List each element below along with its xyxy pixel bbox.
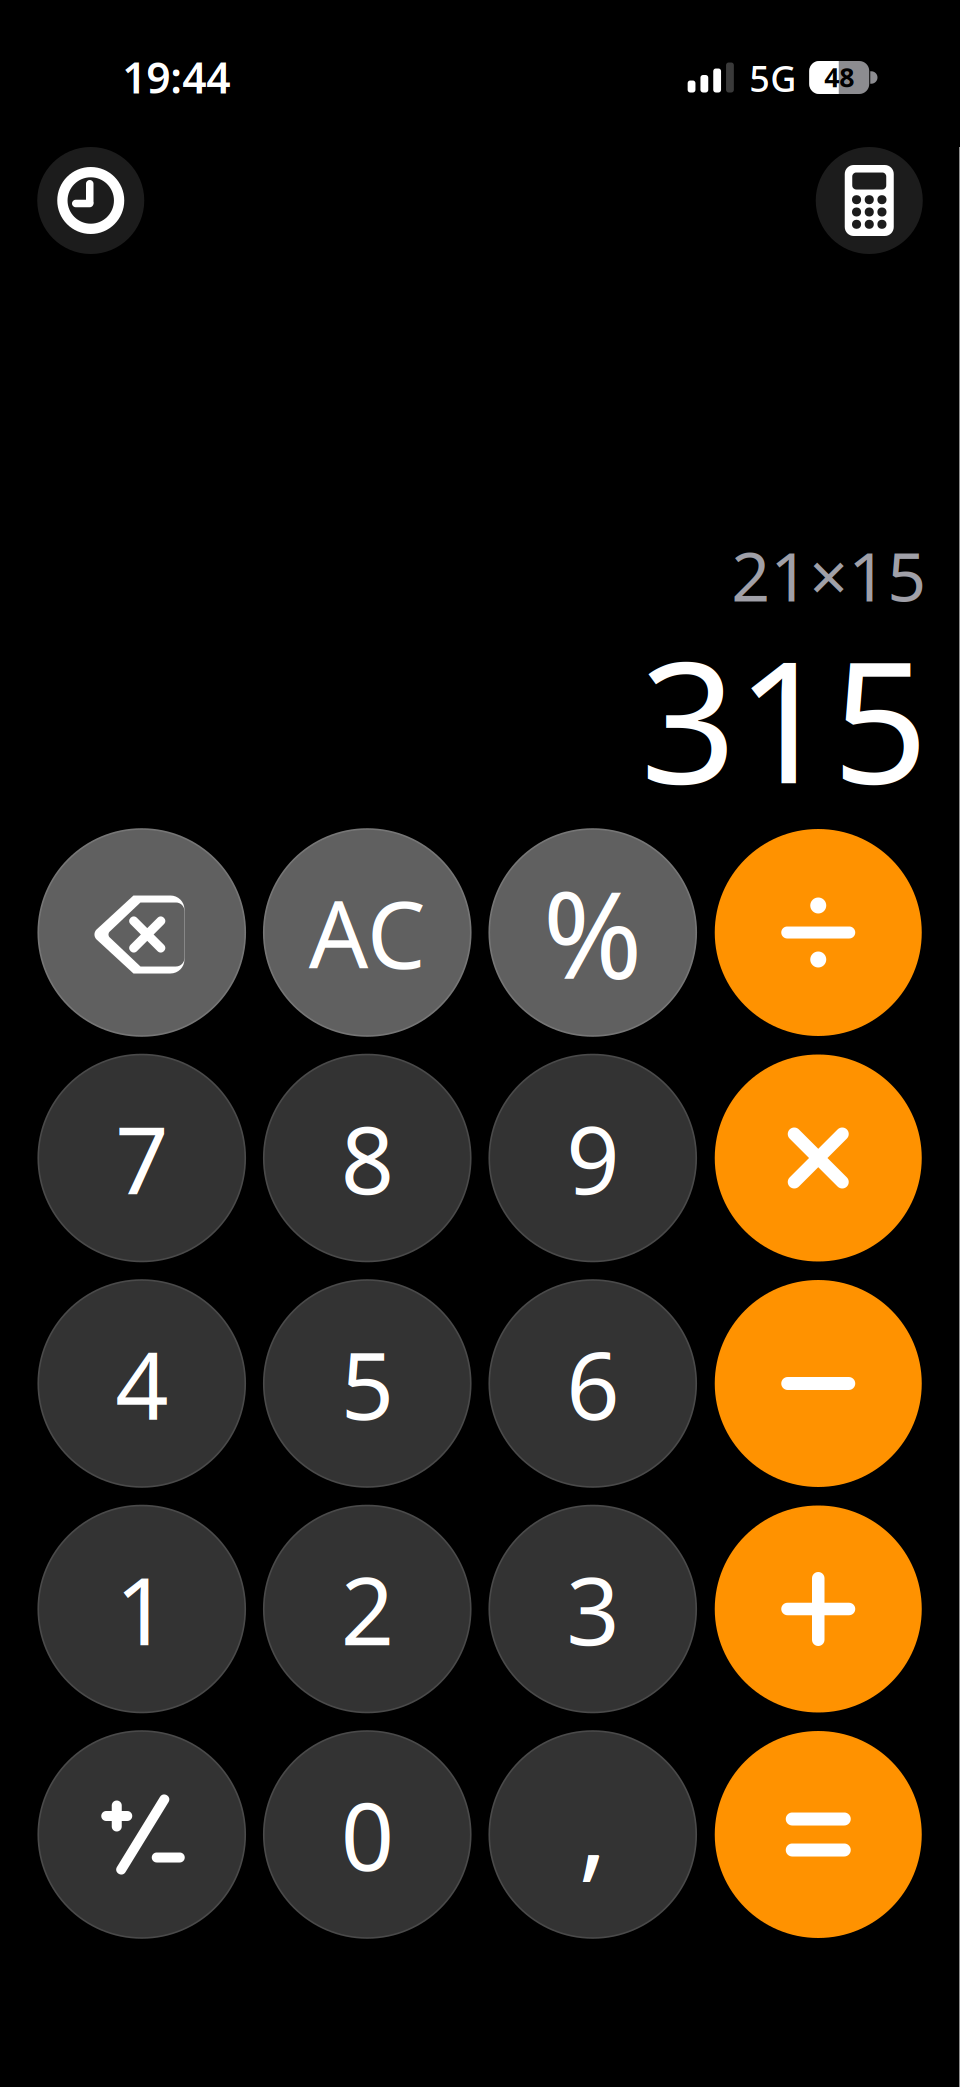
button[interactable]: Add xyxy=(715,1505,922,1712)
staticText: 3 xyxy=(566,1547,619,1671)
staticText: 5 xyxy=(341,1321,394,1445)
button[interactable]: Calculator xyxy=(816,147,923,254)
button[interactable]: 7 xyxy=(38,1054,245,1261)
button[interactable]: 9 xyxy=(489,1054,696,1261)
button[interactable]: AC xyxy=(264,829,471,1036)
button[interactable]: Delete xyxy=(38,829,245,1036)
button[interactable]: 2 xyxy=(264,1505,471,1712)
staticText: 6 xyxy=(566,1321,619,1445)
button[interactable]: 0 xyxy=(264,1731,471,1938)
staticText: 8 xyxy=(341,1096,394,1220)
staticText: 7 xyxy=(115,1096,168,1220)
button[interactable]: Multiply xyxy=(715,1054,922,1261)
staticText: 1 xyxy=(115,1547,168,1671)
staticText: AC xyxy=(309,870,426,994)
button[interactable]: Equals xyxy=(715,1731,922,1938)
staticText: 315 xyxy=(640,606,928,830)
staticText: 0 xyxy=(341,1772,394,1896)
button[interactable]: Percent xyxy=(489,829,696,1036)
button[interactable]: Subtract xyxy=(715,1280,922,1487)
staticText: 5G xyxy=(749,54,796,102)
button[interactable]: History xyxy=(37,147,144,254)
button[interactable]: 3 xyxy=(489,1505,696,1712)
staticText: 2 xyxy=(341,1547,394,1671)
button[interactable]: 1 xyxy=(38,1505,245,1712)
button[interactable]: 4 xyxy=(38,1280,245,1487)
staticText: 21×15 xyxy=(731,530,926,620)
button[interactable]: 8 xyxy=(264,1054,471,1261)
button[interactable]: , xyxy=(489,1731,696,1938)
staticText: 4 xyxy=(115,1321,168,1445)
staticText: 48 xyxy=(824,59,854,95)
staticText: 9 xyxy=(566,1096,619,1220)
button[interactable]: Divide xyxy=(715,829,922,1036)
staticText: 19:44 xyxy=(122,49,230,105)
staticText: % xyxy=(543,853,643,1012)
button[interactable]: 6 xyxy=(489,1280,696,1487)
staticText: , xyxy=(578,1753,607,1898)
button[interactable]: Plus minus xyxy=(38,1731,245,1938)
button[interactable]: 5 xyxy=(264,1280,471,1487)
